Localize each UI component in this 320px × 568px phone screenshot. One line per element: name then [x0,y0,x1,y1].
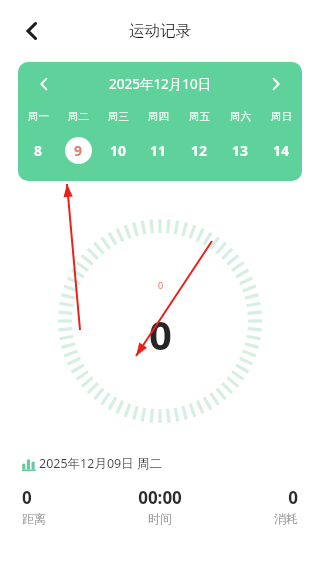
staticText: 距离 [22,511,46,526]
button[interactable]: 0 [206,486,298,526]
staticText: 9 [74,141,83,160]
staticText: 运动记录 [129,21,191,41]
staticText: 周三 [108,110,129,123]
button[interactable]: 8 [18,133,58,167]
button[interactable]: 13 [220,133,261,167]
staticText: 0 [22,486,32,509]
staticText: 12 [191,141,208,160]
button[interactable]: 12 [179,133,220,167]
staticText: 周五 [189,110,210,123]
button[interactable]: 9 [58,133,98,167]
staticText: 11 [150,141,167,160]
staticText: 周日 [271,110,292,123]
staticText: 周一 [28,110,49,123]
staticText: 周四 [148,110,169,123]
button[interactable]: Previous day [28,68,60,100]
staticText: 13 [232,141,249,160]
staticText: 周六 [230,110,251,123]
button[interactable]: 10 [98,133,138,167]
staticText: 时间 [148,511,172,526]
staticText: 2025年12月10日 [109,75,212,93]
staticText: 周二 [68,110,89,123]
staticText: 2025年12月09日 周二 [39,455,162,472]
staticText: 0 [158,279,164,291]
staticText: 消耗 [274,511,298,526]
staticText: 0 [288,486,298,509]
staticText: 10 [110,141,127,160]
staticText: 8 [34,141,43,160]
button[interactable]: Next day [260,68,292,100]
staticText: 14 [273,141,290,160]
staticText: 00:00 [138,486,182,509]
staticText: 0 [149,307,172,361]
button[interactable]: 0 [22,486,114,526]
button[interactable]: 00:00 [114,486,206,526]
button[interactable]: Back [10,9,54,53]
button[interactable]: 11 [138,133,179,167]
button[interactable]: 14 [261,133,302,167]
